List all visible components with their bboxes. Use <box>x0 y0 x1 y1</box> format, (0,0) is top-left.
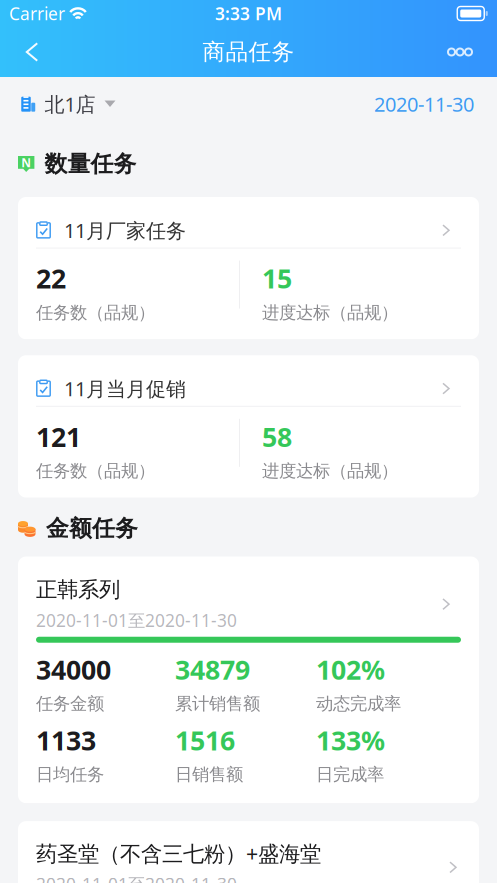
staticText: 2020-11-01至2020-11-30 <box>36 609 237 632</box>
staticText: 金额任务 <box>46 515 138 542</box>
staticText: 日完成率 <box>316 764 384 785</box>
staticText: 日均任务 <box>36 764 104 785</box>
staticText: Carrier <box>9 2 65 25</box>
staticText: 2020-11-30 <box>374 91 474 117</box>
button[interactable]: 11月厂家任务 <box>18 197 479 248</box>
staticText: 药圣堂（不含三七粉）+盛海堂 <box>36 839 321 867</box>
staticText: 22 <box>36 261 66 296</box>
staticText: 任务金额 <box>36 693 104 714</box>
staticText: 11月厂家任务 <box>64 217 186 244</box>
staticText: 日销售额 <box>175 764 243 785</box>
staticText: 121 <box>36 419 81 454</box>
staticText: 商品任务 <box>202 38 294 66</box>
staticText: 进度达标（品规） <box>262 460 398 481</box>
staticText: 34000 <box>36 652 111 687</box>
button[interactable]: 正韩系列 <box>18 556 479 637</box>
button[interactable]: 北1店 <box>21 83 115 125</box>
button[interactable]: 11月当月促销 <box>18 355 479 406</box>
staticText: N <box>21 154 31 170</box>
button[interactable]: 2020-11-30 <box>374 83 474 125</box>
staticText: 动态完成率 <box>316 693 401 714</box>
staticText: 任务数（品规） <box>36 302 155 323</box>
staticText: 1516 <box>175 722 235 758</box>
button[interactable]: More <box>434 27 497 77</box>
staticText: 1133 <box>36 722 96 758</box>
staticText: 数量任务 <box>44 150 136 178</box>
staticText: 北1店 <box>44 91 95 117</box>
staticText: 2020-11-01至2020-11-30 <box>36 872 237 883</box>
staticText: 3:33 PM <box>215 2 282 25</box>
staticText: 34879 <box>175 652 250 687</box>
staticText: 58 <box>262 419 292 454</box>
staticText: 133% <box>316 722 385 758</box>
staticText: 102% <box>316 652 385 687</box>
staticText: 任务数（品规） <box>36 460 155 481</box>
staticText: 进度达标（品规） <box>262 302 398 323</box>
button[interactable]: Back <box>0 27 53 77</box>
button[interactable]: 药圣堂（不含三七粉）+盛海堂 <box>18 821 479 883</box>
staticText: 累计销售额 <box>175 693 260 714</box>
staticText: 正韩系列 <box>36 576 120 603</box>
staticText: 11月当月促销 <box>64 375 186 402</box>
staticText: 15 <box>262 261 292 296</box>
